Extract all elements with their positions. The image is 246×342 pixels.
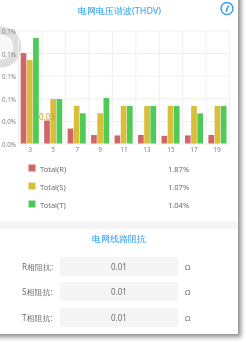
button[interactable]: Info <box>219 0 235 16</box>
staticText: 电网电压谐波(THDV) <box>78 4 161 16</box>
staticText: Ω <box>185 262 191 272</box>
staticText: 9 <box>98 145 102 154</box>
button[interactable]: 0.01 <box>60 308 178 327</box>
staticText: 0.1% <box>2 50 16 58</box>
staticText: Ω <box>185 313 191 323</box>
staticText: 15 <box>167 145 175 154</box>
staticText: 19 <box>213 145 221 154</box>
staticText: 0.01 <box>111 286 127 297</box>
button[interactable]: 0.01 <box>60 257 178 276</box>
staticText: 7 <box>75 145 79 154</box>
staticText: 17 <box>190 145 198 154</box>
staticText: 5 <box>51 145 55 154</box>
button[interactable]: Total(S) <box>28 181 190 192</box>
button[interactable]: 0.01 <box>60 282 178 301</box>
staticText: 1.87% <box>168 164 190 174</box>
staticText: 0.01 <box>111 312 127 323</box>
staticText: R相阻抗: <box>22 261 54 272</box>
staticText: 1.04% <box>168 200 190 210</box>
staticText: 0.1% <box>2 72 16 80</box>
button[interactable]: Total(R) <box>28 163 190 174</box>
staticText: 电网线路阻抗 <box>92 233 146 244</box>
staticText: 0.1% <box>2 27 16 35</box>
staticText: Total(S) <box>40 182 66 192</box>
staticText: Ω <box>185 287 191 297</box>
staticText: 0.1% <box>2 95 16 103</box>
staticText: 1.07% <box>168 182 190 192</box>
staticText: S相阻抗: <box>22 286 53 297</box>
staticText: 0.0% <box>2 140 16 148</box>
staticText: 0.01 <box>111 261 127 272</box>
staticText: 11 <box>120 145 128 154</box>
staticText: Total(R) <box>40 164 67 174</box>
button[interactable]: Total(T) <box>28 199 190 210</box>
staticText: 0.0% <box>2 117 16 125</box>
staticText: 13 <box>143 145 151 154</box>
staticText: 0.03 <box>39 111 55 122</box>
staticText: T相阻抗: <box>22 312 53 323</box>
staticText: Total(T) <box>40 200 66 210</box>
staticText: 3 <box>28 145 32 154</box>
